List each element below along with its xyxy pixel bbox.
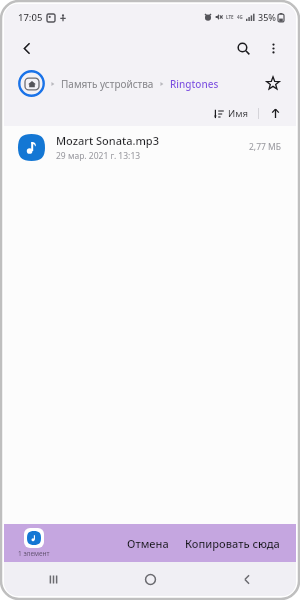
staticText: Память устройства xyxy=(61,77,154,91)
button[interactable]: More options xyxy=(258,33,288,63)
button[interactable]: Device storage root xyxy=(18,70,45,97)
button[interactable]: Home xyxy=(102,562,199,596)
button[interactable]: Sort ascending xyxy=(266,104,284,122)
button[interactable]: Имя xyxy=(211,105,251,122)
button[interactable]: Add to favourites xyxy=(260,70,286,96)
button[interactable]: Mozart Sonata.mp3 xyxy=(4,126,296,168)
button[interactable]: Search xyxy=(228,33,258,63)
staticText: 1 элемент xyxy=(18,549,50,558)
button[interactable]: Ringtones xyxy=(170,77,219,91)
staticText: 17:05 xyxy=(18,11,43,24)
staticText: 4G xyxy=(237,14,243,20)
staticText: Копировать сюда xyxy=(185,536,280,551)
staticText: 2,77 МБ xyxy=(249,141,282,153)
staticText: Имя xyxy=(228,107,248,120)
button[interactable]: Back xyxy=(12,33,42,63)
staticText: Mozart Sonata.mp3 xyxy=(56,133,159,148)
button[interactable]: 1 элемент xyxy=(18,528,50,558)
button[interactable]: Отмена xyxy=(121,532,175,555)
button[interactable]: Back xyxy=(199,562,296,596)
button[interactable]: Recent apps xyxy=(4,562,102,596)
staticText: LTE xyxy=(226,14,234,20)
button[interactable]: Память устройства xyxy=(61,77,154,91)
button[interactable]: Копировать сюда xyxy=(179,532,286,555)
staticText: Ringtones xyxy=(170,77,219,91)
staticText: 35% xyxy=(258,11,276,23)
staticText: Отмена xyxy=(127,536,169,551)
staticText: 29 мар. 2021 г. 13:13 xyxy=(56,150,141,162)
